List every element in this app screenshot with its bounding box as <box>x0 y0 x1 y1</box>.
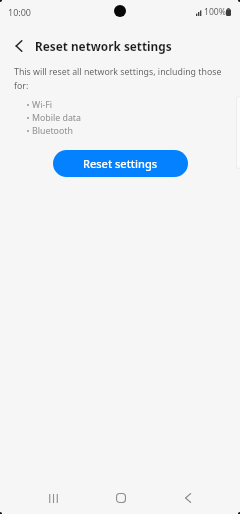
staticText: 100% <box>204 6 226 18</box>
staticText: This will reset all network settings, in… <box>14 66 230 92</box>
staticText: Reset settings <box>83 156 158 171</box>
button[interactable]: Home <box>103 480 139 514</box>
button[interactable]: Back <box>170 480 206 514</box>
button[interactable]: Navigate up <box>3 30 35 62</box>
staticText: Bluetooth <box>32 125 73 137</box>
staticText: Wi-Fi <box>32 99 53 111</box>
staticText: Reset network settings <box>35 38 172 54</box>
button[interactable]: Recent apps <box>35 480 71 514</box>
staticText: Mobile data <box>32 112 81 124</box>
staticText: 10:00 <box>8 6 32 18</box>
button[interactable]: Reset settings <box>53 150 188 177</box>
